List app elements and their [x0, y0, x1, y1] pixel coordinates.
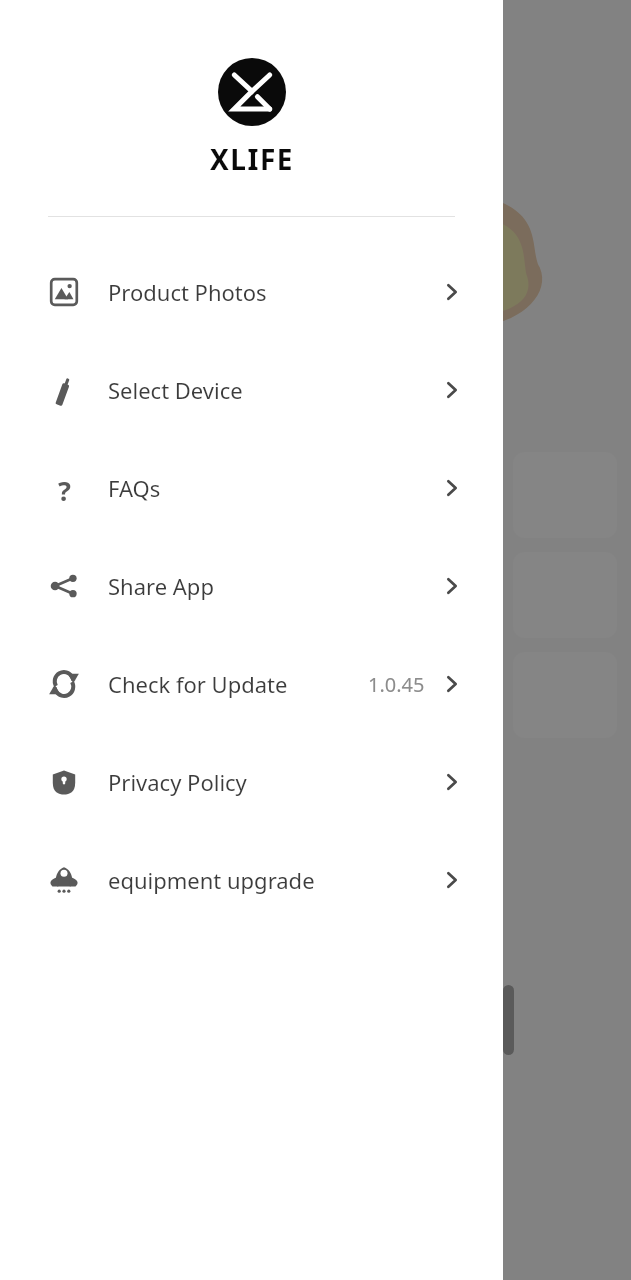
button[interactable]: equipment upgrade	[0, 831, 503, 929]
button[interactable]: ?	[0, 439, 503, 537]
staticText: Privacy Policy	[108, 767, 247, 797]
staticText: XLIFE	[210, 140, 294, 178]
button[interactable]: Close navigation drawer	[503, 0, 631, 1280]
staticText: Check for Update	[108, 669, 288, 699]
staticText: Select Device	[108, 375, 243, 405]
staticText: Share App	[108, 571, 214, 601]
staticText: FAQs	[108, 473, 161, 503]
button[interactable]: Share App	[0, 537, 503, 635]
staticText: Product Photos	[108, 277, 267, 307]
button[interactable]: Check for Update	[0, 635, 503, 733]
staticText: ?	[58, 472, 71, 504]
staticText: equipment upgrade	[108, 865, 315, 895]
button[interactable]: Privacy Policy	[0, 733, 503, 831]
button[interactable]: Product Photos	[0, 243, 503, 341]
staticText: 1.0.45	[368, 671, 425, 698]
button[interactable]: Select Device	[0, 341, 503, 439]
